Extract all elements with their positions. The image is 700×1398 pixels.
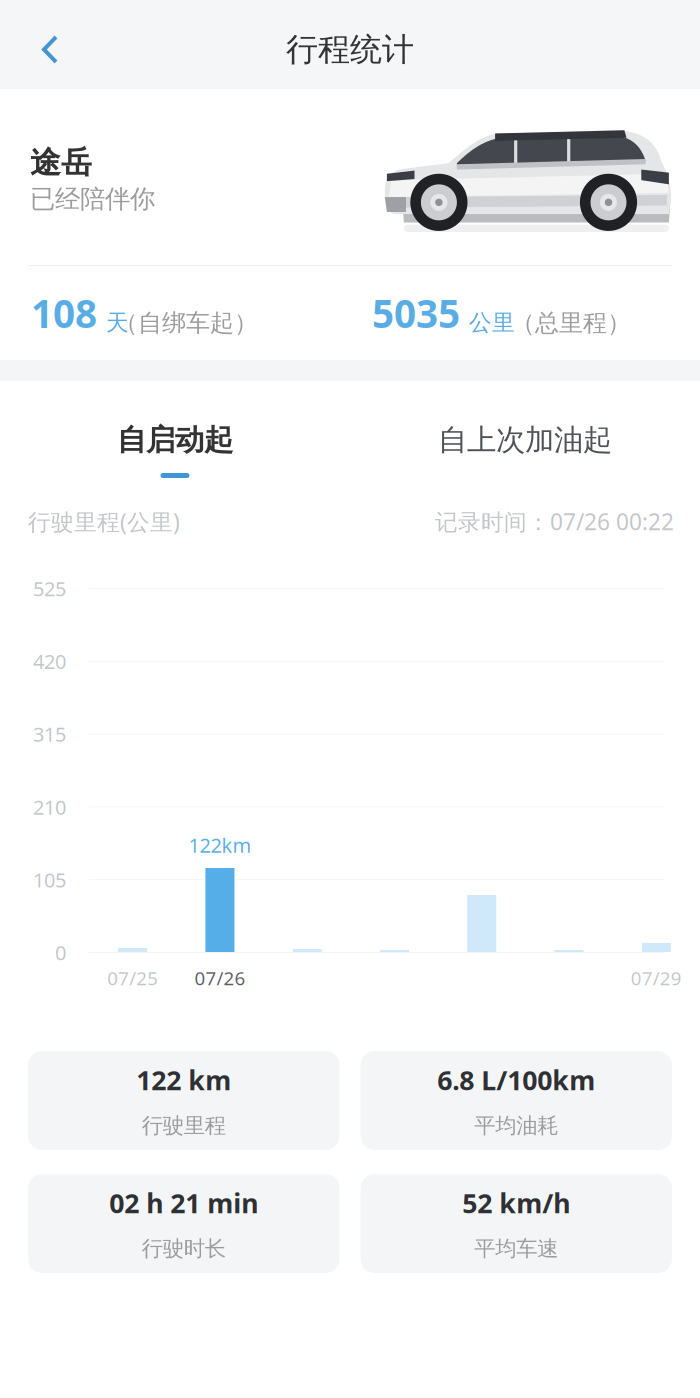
staticText: 自启动起 <box>117 422 233 458</box>
staticText: 02 h 21 min <box>109 1185 258 1221</box>
staticText: 记录时间：07/26 00:22 <box>435 506 674 536</box>
staticText: 行程统计 <box>286 30 414 69</box>
staticText: 122km <box>188 832 251 858</box>
staticText: 105 <box>33 866 66 893</box>
staticText: 07/25 <box>107 966 158 990</box>
staticText: 平均油耗 <box>474 1113 558 1139</box>
staticText: 公里 <box>469 309 515 337</box>
staticText: 5035 <box>372 287 460 339</box>
staticText: 行驶时长 <box>142 1236 226 1262</box>
staticText: 525 <box>33 575 66 602</box>
staticText: 已经陪伴你 <box>30 183 155 214</box>
staticText: 210 <box>33 794 66 820</box>
staticText: 行驶里程(公里) <box>28 506 180 536</box>
staticText: （总里程） <box>511 308 631 338</box>
staticText: 天 <box>106 309 129 337</box>
staticText: 315 <box>33 721 66 747</box>
staticText: 平均车速 <box>474 1236 558 1262</box>
staticText: 07/29 <box>631 966 682 990</box>
staticText: 途岳 <box>30 144 92 181</box>
staticText: 行驶里程 <box>142 1113 226 1139</box>
staticText: 0 <box>55 939 66 966</box>
button[interactable]: 返回 <box>28 9 72 79</box>
button[interactable]: 自启动起 <box>0 381 350 492</box>
button[interactable]: 自上次加油起 <box>350 381 700 492</box>
staticText: 自上次加油起 <box>438 422 612 458</box>
staticText: 122 km <box>136 1062 231 1098</box>
staticText: 07/26 <box>194 966 245 990</box>
staticText: 420 <box>33 648 66 675</box>
staticText: 108 <box>31 287 97 339</box>
staticText: （自绑车起） <box>114 308 258 338</box>
staticText: 6.8 L/100km <box>437 1062 595 1098</box>
staticText: 52 km/h <box>462 1185 570 1221</box>
